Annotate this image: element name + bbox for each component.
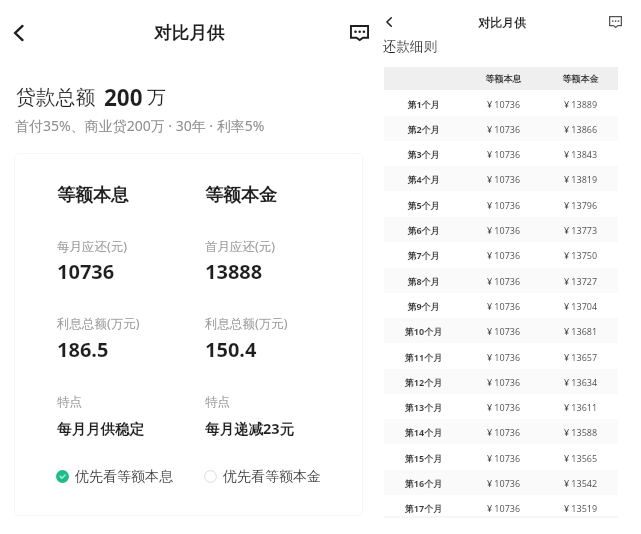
staticText: ¥ 13843 xyxy=(550,148,611,160)
staticText: ¥ 10736 xyxy=(473,351,534,363)
button[interactable]: 第14个月 xyxy=(384,419,618,444)
staticText: 第1个月 xyxy=(393,98,454,110)
staticText: 还款细则 xyxy=(383,38,437,55)
staticText: 利息总额(万元) xyxy=(57,315,140,332)
staticText: 第15个月 xyxy=(393,452,454,464)
staticText: 第11个月 xyxy=(393,351,454,363)
staticText: 每月递减23元 xyxy=(205,418,295,438)
staticText: 第17个月 xyxy=(393,502,454,514)
staticText: ¥ 13819 xyxy=(550,173,611,185)
button[interactable]: 第6个月 xyxy=(384,217,618,242)
staticText: ¥ 13588 xyxy=(550,426,611,438)
staticText: ¥ 10736 xyxy=(473,199,534,211)
staticText: 第5个月 xyxy=(393,199,454,211)
staticText: 第3个月 xyxy=(393,148,454,160)
staticText: ¥ 13889 xyxy=(550,98,611,110)
staticText: 200 xyxy=(104,82,143,113)
staticText: 每月应还(元) xyxy=(57,238,128,255)
staticText: ¥ 10736 xyxy=(473,452,534,464)
staticText: 特点 xyxy=(205,394,230,410)
staticText: ¥ 10736 xyxy=(473,502,534,514)
button[interactable]: 第11个月 xyxy=(384,344,618,369)
button[interactable]: Comments xyxy=(604,11,626,33)
staticText: ¥ 10736 xyxy=(473,477,534,489)
staticText: ¥ 13565 xyxy=(550,452,611,464)
staticText: 首月应还(元) xyxy=(205,238,276,255)
staticText: ¥ 13681 xyxy=(550,325,611,337)
staticText: 第16个月 xyxy=(393,477,454,489)
staticText: 第8个月 xyxy=(393,275,454,287)
button[interactable]: 第4个月 xyxy=(384,166,618,191)
staticText: ¥ 10736 xyxy=(473,249,534,261)
staticText: 10736 xyxy=(57,258,115,285)
staticText: ¥ 10736 xyxy=(473,224,534,236)
staticText: 万 xyxy=(147,86,166,110)
staticText: ¥ 10736 xyxy=(473,426,534,438)
staticText: ¥ 10736 xyxy=(473,300,534,312)
staticText: 首付35%、商业贷200万 · 30年 · 利率5% xyxy=(15,116,265,135)
staticText: 等额本息 xyxy=(473,73,534,84)
staticText: ¥ 13704 xyxy=(550,300,611,312)
staticText: ¥ 10736 xyxy=(473,325,534,337)
staticText: ¥ 13611 xyxy=(550,401,611,413)
staticText: 第2个月 xyxy=(393,123,454,135)
staticText: 150.4 xyxy=(205,336,257,363)
staticText: ¥ 13542 xyxy=(550,477,611,489)
button[interactable]: 第2个月 xyxy=(384,116,618,141)
button[interactable]: 第1个月 xyxy=(384,91,618,116)
staticText: ¥ 13727 xyxy=(550,275,611,287)
staticText: ¥ 13634 xyxy=(550,376,611,388)
staticText: ¥ 10736 xyxy=(473,376,534,388)
staticText: ¥ 10736 xyxy=(473,123,534,135)
button[interactable]: 第10个月 xyxy=(384,318,618,343)
staticText: 对比月供 xyxy=(478,15,526,30)
button[interactable]: 第13个月 xyxy=(384,394,618,419)
staticText: 第12个月 xyxy=(393,376,454,388)
button[interactable]: 第17个月 xyxy=(384,495,618,520)
button[interactable]: 优先看等额本金 xyxy=(204,466,321,487)
staticText: ¥ 13796 xyxy=(550,199,611,211)
staticText: ¥ 13657 xyxy=(550,351,611,363)
staticText: 等额本息 xyxy=(57,184,129,207)
staticText: ¥ 10736 xyxy=(473,148,534,160)
button[interactable]: 第12个月 xyxy=(384,369,618,394)
staticText: 第6个月 xyxy=(393,224,454,236)
staticText: ¥ 13519 xyxy=(550,502,611,514)
button[interactable]: Back xyxy=(378,11,400,33)
staticText: ¥ 13866 xyxy=(550,123,611,135)
staticText: 贷款总额 xyxy=(16,85,96,110)
button[interactable]: 第9个月 xyxy=(384,293,618,318)
staticText: ¥ 10736 xyxy=(473,173,534,185)
staticText: 特点 xyxy=(57,394,82,410)
staticText: 对比月供 xyxy=(154,22,224,44)
button[interactable]: 第3个月 xyxy=(384,141,618,166)
staticText: 第4个月 xyxy=(393,173,454,185)
staticText: 第7个月 xyxy=(393,249,454,261)
staticText: ¥ 13773 xyxy=(550,224,611,236)
button[interactable]: 第5个月 xyxy=(384,192,618,217)
button[interactable]: 第7个月 xyxy=(384,242,618,267)
staticText: 第9个月 xyxy=(393,300,454,312)
staticText: 第13个月 xyxy=(393,401,454,413)
staticText: ¥ 13750 xyxy=(550,249,611,261)
staticText: ¥ 10736 xyxy=(473,401,534,413)
staticText: 186.5 xyxy=(57,336,109,363)
staticText: 优先看等额本息 xyxy=(75,468,173,486)
button[interactable]: 第15个月 xyxy=(384,445,618,470)
staticText: 每月月供稳定 xyxy=(57,420,144,438)
staticText: ¥ 10736 xyxy=(473,98,534,110)
button[interactable]: 第8个月 xyxy=(384,268,618,293)
staticText: 优先看等额本金 xyxy=(223,468,321,486)
staticText: 13888 xyxy=(205,258,263,285)
staticText: ¥ 10736 xyxy=(473,275,534,287)
staticText: 利息总额(万元) xyxy=(205,315,288,332)
button[interactable]: Back xyxy=(3,17,35,49)
button[interactable]: 第16个月 xyxy=(384,470,618,495)
staticText: 等额本金 xyxy=(205,184,277,207)
staticText: 等额本金 xyxy=(550,73,611,84)
button[interactable]: Comments xyxy=(342,16,376,50)
staticText: 第14个月 xyxy=(393,426,454,438)
button[interactable]: 优先看等额本息 xyxy=(56,466,173,487)
staticText: 第10个月 xyxy=(393,325,454,337)
